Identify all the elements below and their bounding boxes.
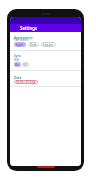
button[interactable]: System bbox=[41, 42, 56, 47]
staticText: Data bbox=[14, 75, 22, 79]
staticText: Appearance bbox=[14, 35, 33, 39]
button[interactable]: On bbox=[14, 62, 21, 67]
button[interactable]: Dark bbox=[28, 42, 39, 47]
staticText: Tab theme bbox=[14, 38, 29, 42]
staticText: Dark bbox=[30, 43, 37, 47]
staticText: Off bbox=[23, 63, 28, 67]
button[interactable]: Off bbox=[22, 62, 29, 67]
staticText: Settings bbox=[20, 25, 38, 31]
staticText: Sync bbox=[14, 53, 22, 57]
button[interactable]: Delete all data bbox=[14, 80, 38, 84]
button[interactable]: Light bbox=[14, 42, 26, 47]
staticText: System bbox=[43, 43, 54, 47]
staticText: On bbox=[15, 63, 20, 67]
staticText: Light bbox=[16, 43, 24, 47]
button[interactable]: Navigate up bbox=[12, 25, 19, 32]
staticText: Delete all data bbox=[16, 80, 36, 84]
staticText: Wifi bbox=[14, 58, 20, 62]
